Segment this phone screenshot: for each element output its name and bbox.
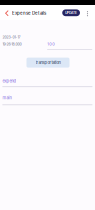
staticText: transportation	[35, 60, 60, 65]
staticText: 2023-01-17	[3, 35, 21, 39]
button[interactable]: More options	[83, 8, 92, 20]
staticText: 100	[47, 42, 55, 46]
button[interactable]: transportation	[26, 58, 69, 68]
staticText: Expense Details	[12, 11, 46, 16]
staticText: main	[2, 95, 11, 100]
button[interactable]: Back	[0, 0, 14, 26]
staticText: expend	[2, 79, 16, 84]
button[interactable]: UPDATE	[62, 9, 80, 16]
staticText: UPDATE	[65, 11, 77, 15]
staticText: 19:26:18.000	[3, 42, 22, 46]
